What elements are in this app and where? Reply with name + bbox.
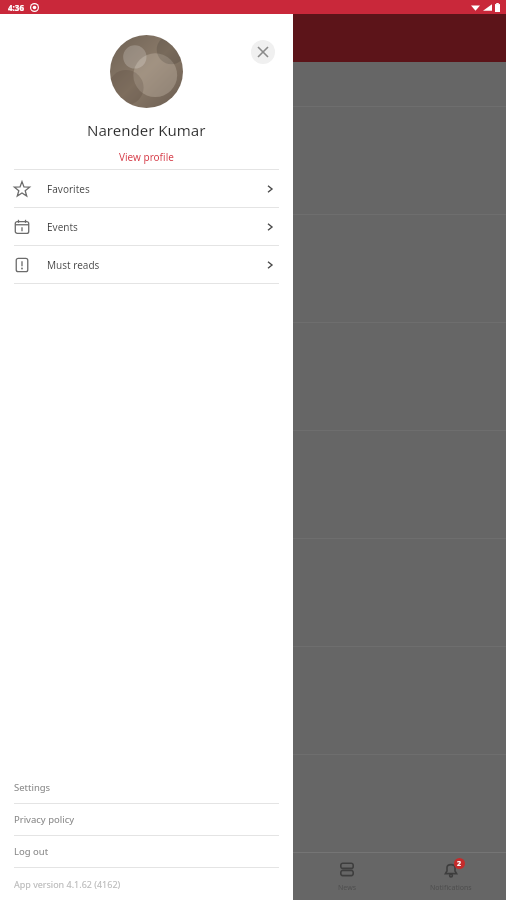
staticText: Must reads [47,258,100,272]
button[interactable]: Must reads [0,246,293,283]
staticText: Favorites [47,182,90,196]
staticText: 2 [457,859,462,869]
button[interactable]: News [297,852,397,900]
button[interactable]: Notifications [401,852,501,900]
staticText: App version 4.1.62 (4162) [14,878,121,890]
staticText: Privacy policy [14,813,75,826]
staticText: Settings [14,781,51,794]
button[interactable]: Settings [0,772,293,803]
button[interactable]: Log out [0,836,293,867]
staticText: Events [47,220,78,234]
button[interactable]: Favorites [0,170,293,207]
button[interactable]: View profile [113,148,180,166]
staticText: Log out [14,845,49,858]
button[interactable]: Events [0,208,293,245]
staticText: Notifications [430,883,472,893]
staticText: News [338,883,356,893]
button[interactable]: Privacy policy [0,804,293,835]
staticText: 4:36 [8,2,24,13]
button[interactable]: Profile photo [110,35,183,108]
staticText: View profile [119,150,174,164]
staticText: Narender Kumar [87,120,206,140]
button[interactable]: Close [251,40,275,64]
